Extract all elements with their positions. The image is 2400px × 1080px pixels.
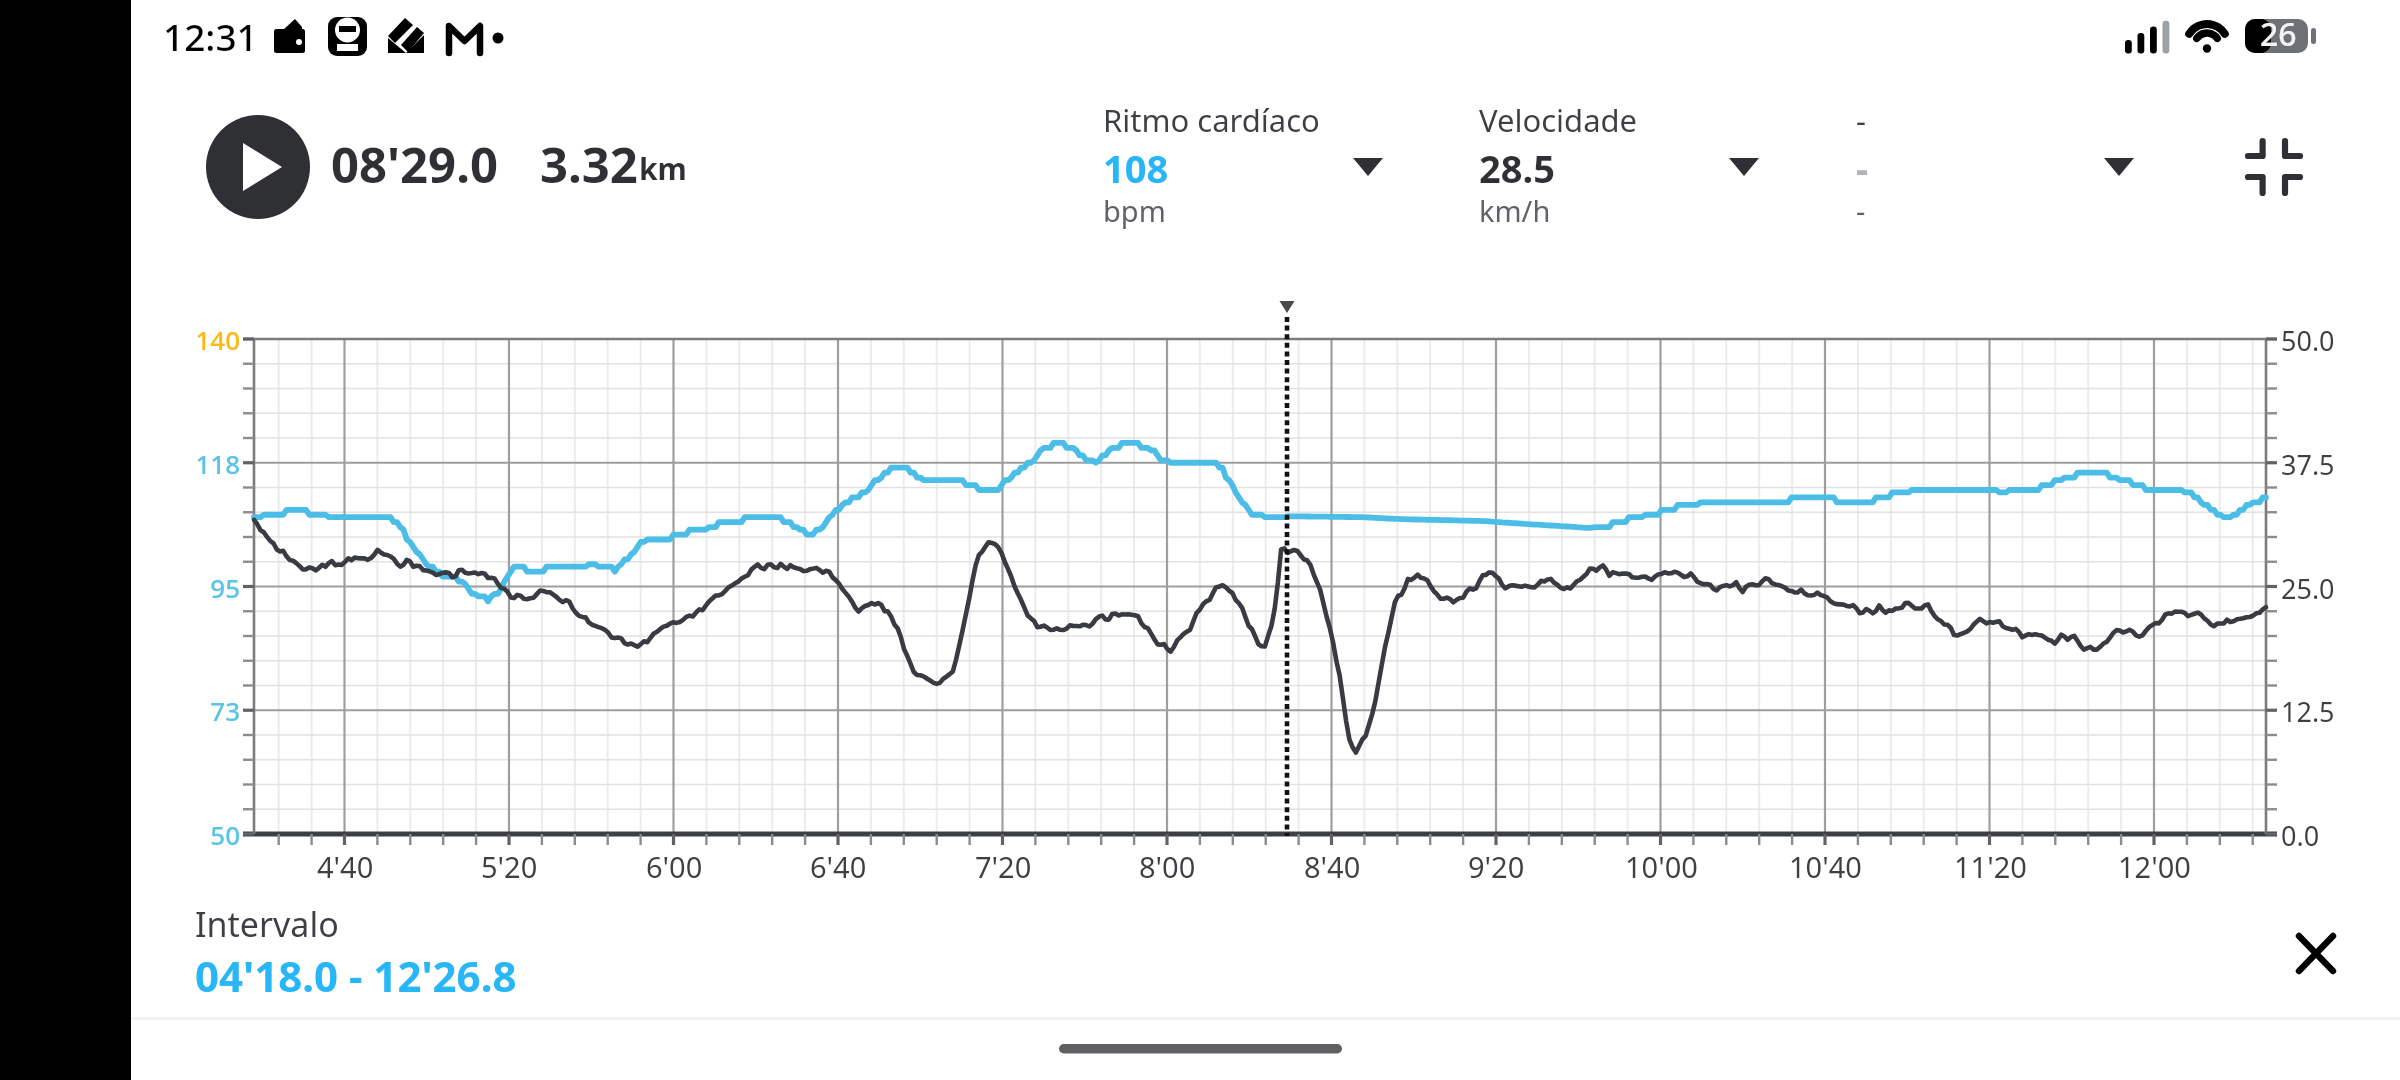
staticText: 4'40 bbox=[317, 847, 374, 883]
staticText: 6'00 bbox=[646, 847, 703, 883]
staticText: 37.5 bbox=[2281, 446, 2335, 480]
staticText: 12'00 bbox=[2118, 847, 2191, 883]
staticText: 12:31 bbox=[163, 11, 258, 61]
staticText: 9'20 bbox=[1468, 847, 1525, 883]
staticText: - bbox=[1856, 99, 1866, 141]
staticText: - bbox=[1856, 142, 1869, 194]
staticText: km/h bbox=[1479, 191, 1551, 230]
staticText: 3.32 bbox=[540, 131, 638, 198]
staticText: 95 bbox=[210, 570, 240, 604]
staticText: 5'20 bbox=[481, 847, 538, 883]
staticText: 73 bbox=[210, 693, 240, 727]
button[interactable]: Play bbox=[206, 115, 310, 219]
staticText: Intervalo bbox=[195, 901, 339, 947]
staticText: 7'20 bbox=[975, 847, 1032, 883]
button[interactable]: Ritmo cardíaco 108 bpm, escolher métrica bbox=[1103, 95, 1413, 240]
button[interactable]: Exit full screen bbox=[2228, 126, 2310, 208]
staticText: Velocidade bbox=[1479, 99, 1638, 141]
staticText: km bbox=[639, 148, 687, 189]
staticText: 50.0 bbox=[2281, 322, 2335, 356]
staticText: 25.0 bbox=[2281, 570, 2335, 604]
staticText: 6'40 bbox=[810, 847, 867, 883]
button[interactable]: Métrica não definida, escolher métrica bbox=[1856, 95, 2164, 240]
staticText: 8'00 bbox=[1139, 847, 1196, 883]
button[interactable]: Close bbox=[2276, 913, 2356, 993]
staticText: 12.5 bbox=[2281, 693, 2335, 727]
staticText: 28.5 bbox=[1479, 142, 1555, 194]
staticText: 26 bbox=[2260, 12, 2297, 56]
button[interactable]: Gráfico de ritmo cardíaco e velocidade bbox=[254, 339, 2266, 834]
staticText: 0.0 bbox=[2281, 817, 2320, 851]
staticText: 10'00 bbox=[1625, 847, 1698, 883]
staticText: Ritmo cardíaco bbox=[1103, 99, 1320, 141]
staticText: - bbox=[1856, 191, 1866, 230]
staticText: 8'40 bbox=[1304, 847, 1361, 883]
staticText: 140 bbox=[195, 322, 240, 356]
staticText: 08'29.0 bbox=[331, 131, 498, 198]
staticText: 118 bbox=[195, 446, 240, 480]
staticText: 50 bbox=[210, 817, 240, 851]
staticText: 108 bbox=[1103, 142, 1169, 194]
staticText: 11'20 bbox=[1954, 847, 2027, 883]
staticText: 10'40 bbox=[1789, 847, 1862, 883]
staticText: 04'18.0 - 12'26.8 bbox=[195, 947, 517, 1004]
staticText: bpm bbox=[1103, 191, 1166, 230]
button[interactable]: Velocidade 28.5 km/h, escolher métrica bbox=[1479, 95, 1789, 240]
